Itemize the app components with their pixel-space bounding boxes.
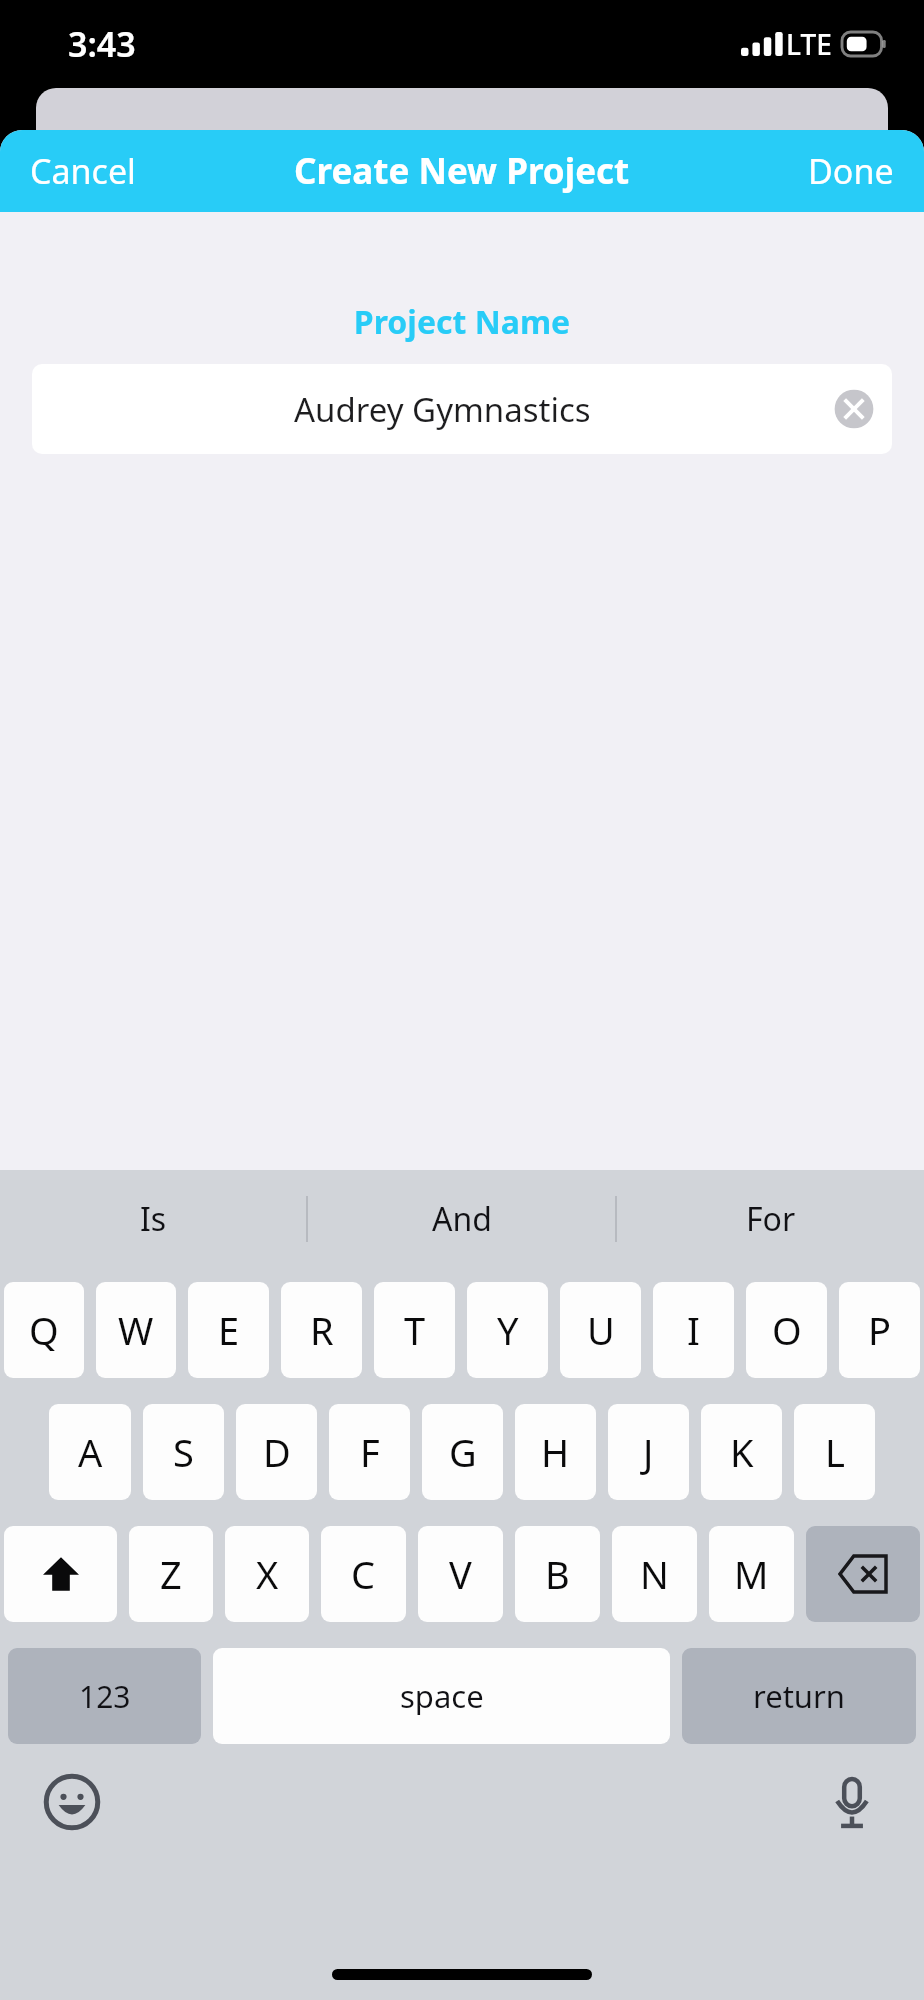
- staticText: O: [772, 1304, 802, 1356]
- button[interactable]: P: [839, 1282, 920, 1378]
- staticText: R: [310, 1304, 334, 1356]
- staticText: X: [256, 1548, 279, 1600]
- staticText: M: [734, 1548, 769, 1600]
- staticText: Audrey Gymnastics: [294, 387, 591, 432]
- staticText: I: [687, 1304, 700, 1356]
- staticText: Project Name: [0, 300, 924, 344]
- staticText: C: [351, 1548, 376, 1600]
- staticText: P: [868, 1304, 891, 1356]
- button[interactable]: Is: [0, 1170, 306, 1268]
- staticText: E: [218, 1304, 240, 1356]
- button[interactable]: D: [236, 1404, 317, 1500]
- staticText: N: [640, 1548, 669, 1600]
- staticText: G: [449, 1426, 477, 1478]
- staticText: D: [263, 1426, 291, 1478]
- staticText: H: [541, 1426, 570, 1478]
- button[interactable]: Y: [467, 1282, 548, 1378]
- button[interactable]: T: [374, 1282, 455, 1378]
- button[interactable]: W: [96, 1282, 176, 1378]
- button[interactable]: Audrey Gymnastics: [32, 364, 892, 454]
- staticText: And: [432, 1197, 492, 1241]
- staticText: Y: [497, 1304, 519, 1356]
- button[interactable]: B: [515, 1526, 600, 1622]
- staticText: A: [78, 1426, 103, 1478]
- button[interactable]: O: [746, 1282, 827, 1378]
- staticText: F: [360, 1426, 380, 1478]
- staticText: For: [746, 1197, 796, 1241]
- button[interactable]: And: [308, 1170, 615, 1268]
- button[interactable]: S: [143, 1404, 224, 1500]
- staticText: K: [730, 1426, 754, 1478]
- button[interactable]: Z: [129, 1526, 213, 1622]
- staticText: V: [449, 1548, 472, 1600]
- button[interactable]: Done: [778, 136, 924, 206]
- button[interactable]: G: [422, 1404, 503, 1500]
- staticText: LTE: [786, 25, 832, 63]
- staticText: space: [400, 1675, 484, 1717]
- staticText: Create New Project: [294, 147, 630, 195]
- staticText: Z: [160, 1548, 182, 1600]
- button[interactable]: Emoji: [36, 1766, 108, 1838]
- button[interactable]: J: [608, 1404, 689, 1500]
- button[interactable]: return: [682, 1648, 916, 1744]
- staticText: Is: [140, 1197, 167, 1241]
- button[interactable]: Shift: [4, 1526, 117, 1622]
- button[interactable]: V: [418, 1526, 503, 1622]
- staticText: S: [173, 1426, 194, 1478]
- staticText: return: [753, 1675, 845, 1717]
- button[interactable]: A: [49, 1404, 131, 1500]
- button[interactable]: Q: [4, 1282, 84, 1378]
- button[interactable]: Cancel: [0, 136, 166, 206]
- button[interactable]: For: [617, 1170, 924, 1268]
- button[interactable]: R: [281, 1282, 362, 1378]
- button[interactable]: L: [794, 1404, 875, 1500]
- button[interactable]: space: [213, 1648, 670, 1744]
- button[interactable]: U: [560, 1282, 641, 1378]
- button[interactable]: F: [329, 1404, 410, 1500]
- staticText: 123: [79, 1676, 131, 1717]
- button[interactable]: C: [321, 1526, 406, 1622]
- staticText: J: [643, 1426, 654, 1478]
- staticText: B: [545, 1548, 570, 1600]
- staticText: 3:43: [68, 21, 136, 67]
- staticText: Done: [808, 148, 894, 194]
- button[interactable]: H: [515, 1404, 596, 1500]
- button[interactable]: N: [612, 1526, 697, 1622]
- button[interactable]: Dictation: [816, 1766, 888, 1838]
- staticText: Q: [29, 1304, 59, 1356]
- button[interactable]: X: [225, 1526, 309, 1622]
- button[interactable]: I: [653, 1282, 734, 1378]
- staticText: Cancel: [30, 148, 136, 194]
- button[interactable]: Backspace: [806, 1526, 920, 1622]
- button[interactable]: K: [701, 1404, 782, 1500]
- button[interactable]: 123: [8, 1648, 201, 1744]
- staticText: U: [587, 1304, 615, 1356]
- button[interactable]: E: [188, 1282, 269, 1378]
- staticText: T: [404, 1304, 426, 1356]
- staticText: W: [118, 1304, 154, 1356]
- button[interactable]: M: [709, 1526, 794, 1622]
- staticText: L: [825, 1426, 845, 1478]
- button[interactable]: Clear text: [832, 387, 876, 431]
